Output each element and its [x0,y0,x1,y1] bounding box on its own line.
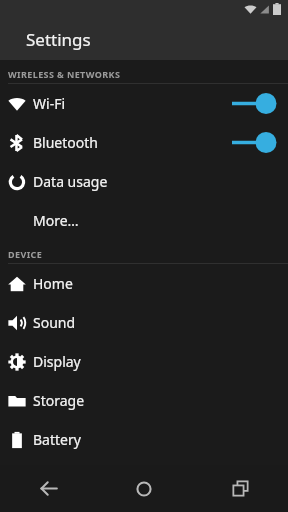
staticText: WIRELESS & NETWORKS [8,68,121,80]
button[interactable]: Home [0,264,288,303]
staticText: Data usage [33,172,108,191]
button[interactable]: Battery [0,420,288,459]
button[interactable]: Recent apps [192,465,288,512]
staticText: Wi-Fi [33,94,66,113]
staticText: DEVICE [8,248,43,260]
button[interactable]: Bluetooth [0,123,288,162]
button[interactable]: Bluetooth switch [231,123,279,162]
staticText: More… [33,211,79,230]
button[interactable]: Wi-Fi switch [231,84,279,123]
staticText: Settings [26,28,91,51]
staticText: Home [33,274,73,293]
staticText: Display [33,352,81,371]
button[interactable]: Data usage [0,162,288,201]
staticText: Battery [33,430,81,449]
staticText: Bluetooth [33,133,98,152]
button[interactable]: Display [0,342,288,381]
button[interactable]: Home [96,465,192,512]
button[interactable]: Sound [0,303,288,342]
staticText: Sound [33,313,76,332]
button[interactable]: Storage [0,381,288,420]
button[interactable]: Wi-Fi [0,84,288,123]
button[interactable]: More… [0,201,288,240]
staticText: Storage [33,391,85,410]
button[interactable]: Back [0,465,96,512]
